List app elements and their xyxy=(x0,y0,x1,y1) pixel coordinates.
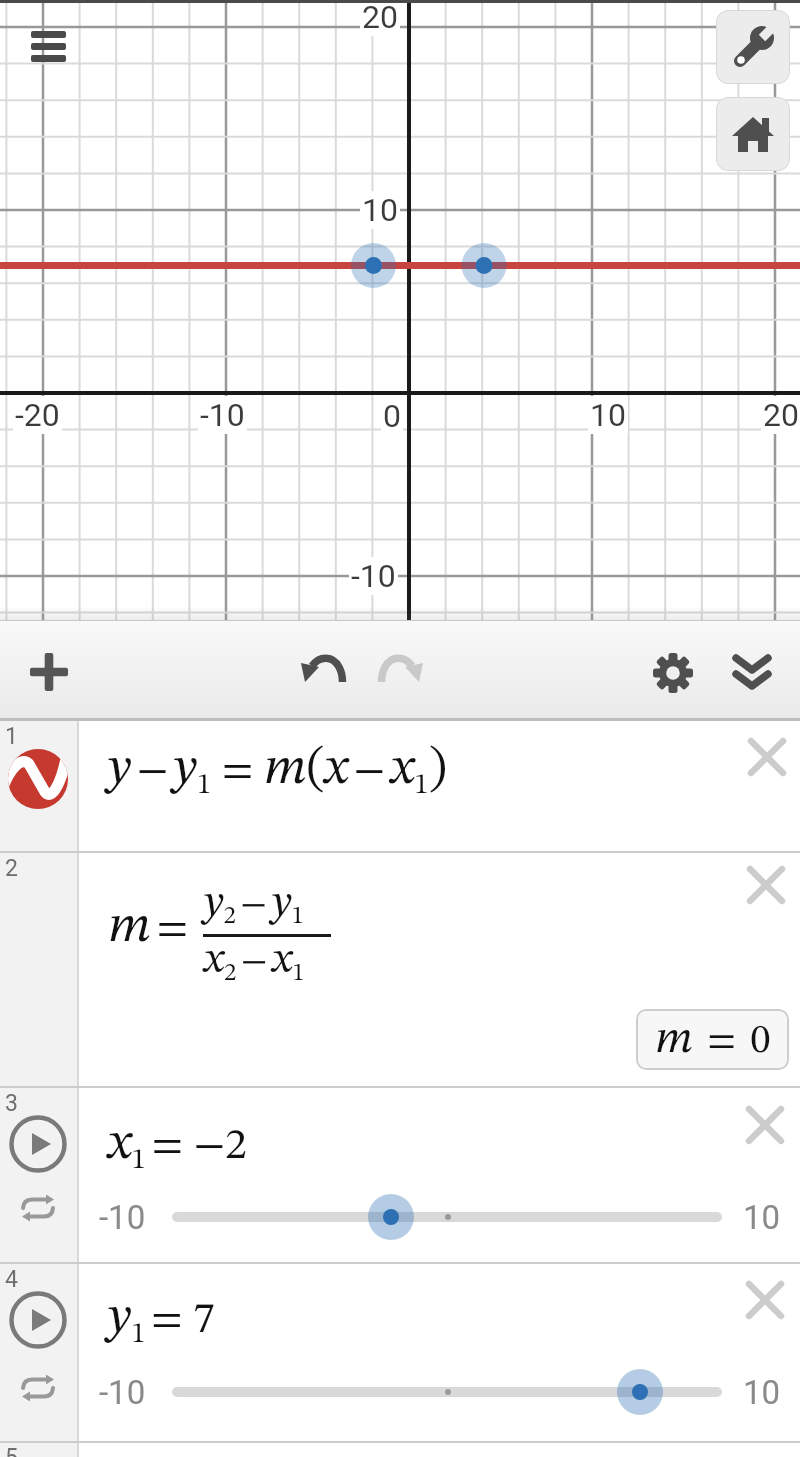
staticText: 0 xyxy=(383,397,401,435)
staticText: 20 xyxy=(763,396,799,434)
button[interactable] xyxy=(653,653,693,693)
button[interactable] xyxy=(20,1194,56,1222)
button[interactable]: y − y1 = m(x − x1) xyxy=(108,721,447,821)
button[interactable] xyxy=(732,655,772,691)
button[interactable] xyxy=(632,1384,648,1400)
staticText: 20 xyxy=(362,0,398,36)
staticText: y2 − y1 xyxy=(204,881,304,929)
staticText: -10 xyxy=(99,1373,146,1412)
staticText: m = xyxy=(108,901,189,953)
button[interactable] xyxy=(383,1209,399,1225)
staticText: -10 xyxy=(351,557,396,595)
button[interactable] xyxy=(30,653,68,691)
button[interactable] xyxy=(172,1212,722,1222)
button[interactable]: m = xyxy=(108,887,189,967)
staticText: -10 xyxy=(99,1198,146,1237)
staticText: -10 xyxy=(200,396,245,434)
button[interactable] xyxy=(300,655,346,687)
button[interactable] xyxy=(8,1290,68,1350)
staticText: 10 xyxy=(362,191,398,229)
button[interactable] xyxy=(746,1281,784,1319)
staticText: x2 − x1 xyxy=(204,938,305,986)
button[interactable] xyxy=(748,738,786,776)
staticText: 10 xyxy=(743,1198,781,1237)
button[interactable] xyxy=(716,10,790,84)
staticText: 10 xyxy=(590,396,626,434)
button[interactable] xyxy=(172,1387,722,1397)
button[interactable] xyxy=(8,749,68,809)
button[interactable] xyxy=(8,1114,68,1174)
staticText: -20 xyxy=(15,396,60,434)
staticText: y − y1 = m(x − x1) xyxy=(108,743,447,800)
staticText: 4 xyxy=(5,1266,18,1293)
button[interactable]: x1 = −2 xyxy=(108,1096,247,1196)
button[interactable]: y1 = 7 xyxy=(108,1270,215,1370)
staticText: y1 = 7 xyxy=(108,1292,215,1349)
button[interactable] xyxy=(20,1374,56,1402)
staticText: x1 = −2 xyxy=(108,1118,247,1175)
staticText: m = 0 xyxy=(655,1017,771,1063)
staticText: 10 xyxy=(743,1373,781,1412)
staticText: 1 xyxy=(5,723,18,750)
button[interactable] xyxy=(28,28,70,68)
staticText: 3 xyxy=(5,1090,18,1117)
button[interactable] xyxy=(747,866,785,904)
button[interactable] xyxy=(746,1106,784,1144)
button[interactable] xyxy=(378,655,424,687)
staticText: 2 xyxy=(5,855,18,882)
button[interactable] xyxy=(716,97,790,171)
button[interactable]: m = 0 xyxy=(636,1009,789,1070)
staticText: 5 xyxy=(5,1444,18,1457)
